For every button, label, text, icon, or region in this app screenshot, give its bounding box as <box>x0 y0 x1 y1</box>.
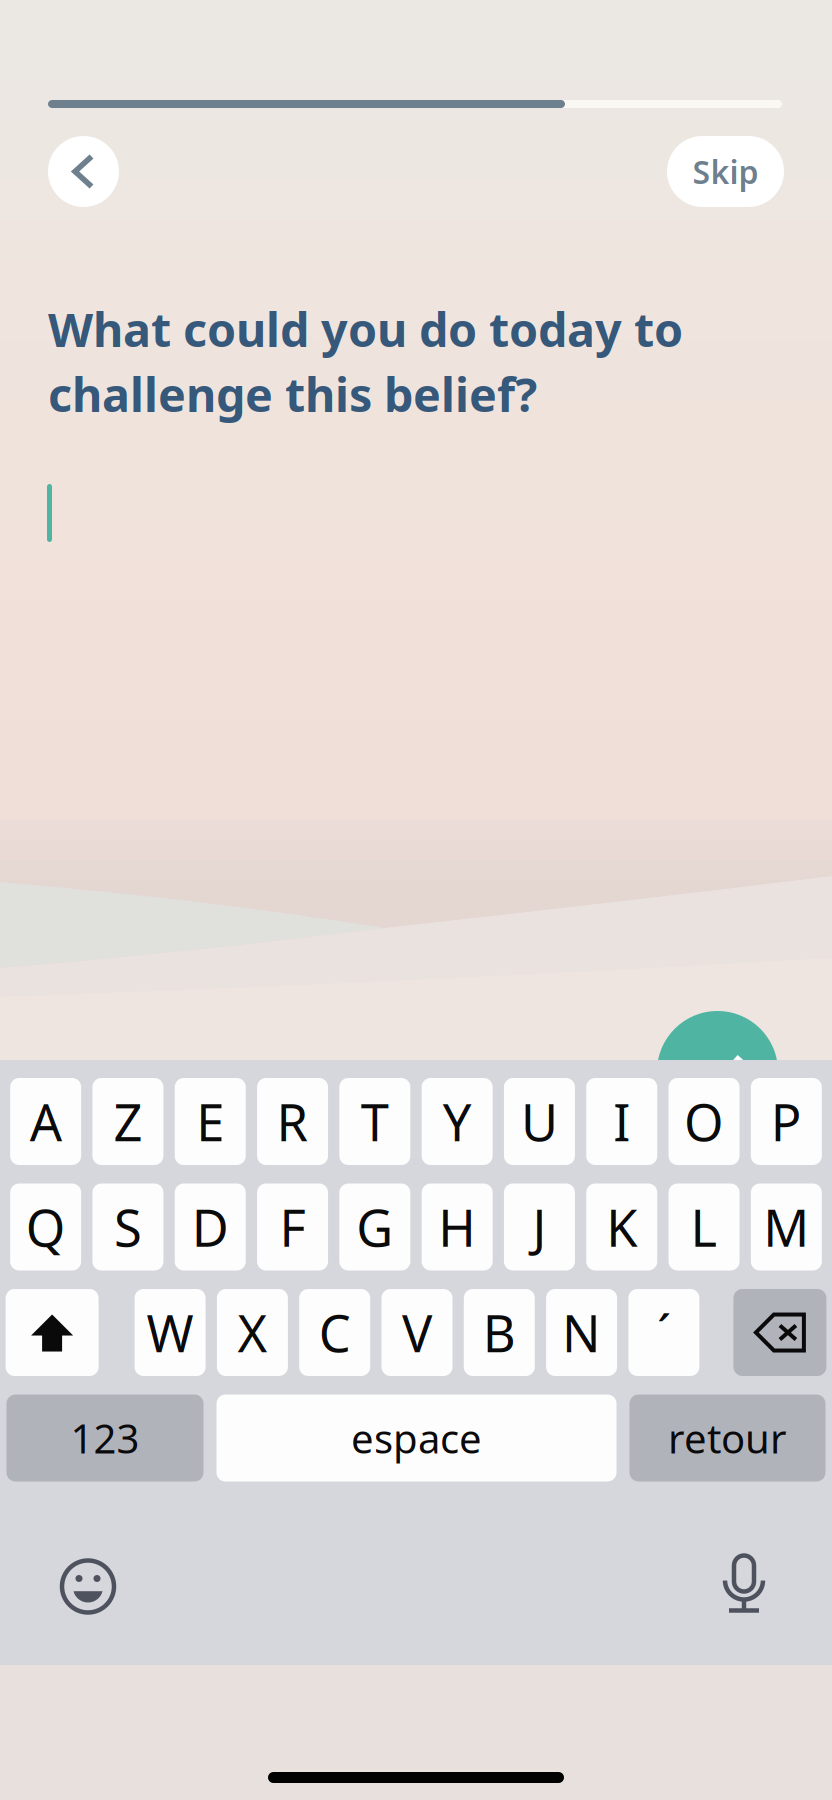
staticText: C <box>319 1299 351 1366</box>
button[interactable]: B <box>464 1289 535 1376</box>
staticText: Skip <box>692 150 758 193</box>
staticText: I <box>613 1088 630 1155</box>
button[interactable]: M <box>751 1183 822 1270</box>
button[interactable]: Skip <box>667 136 784 207</box>
button[interactable]: A <box>10 1078 81 1165</box>
staticText: X <box>237 1299 267 1366</box>
staticText: Z <box>113 1088 142 1155</box>
button[interactable]: ´ <box>628 1289 699 1376</box>
button[interactable]: I <box>586 1078 657 1165</box>
button[interactable]: D <box>175 1183 246 1270</box>
staticText: ´ <box>657 1299 671 1366</box>
button[interactable]: T <box>339 1078 410 1165</box>
button[interactable]: W <box>135 1289 206 1376</box>
button[interactable]: Y <box>422 1078 493 1165</box>
staticText: S <box>114 1193 142 1261</box>
button[interactable]: Z <box>92 1078 163 1165</box>
button[interactable]: C <box>299 1289 370 1376</box>
staticText: G <box>356 1193 393 1261</box>
staticText: espace <box>351 1411 482 1464</box>
button[interactable]: X <box>217 1289 288 1376</box>
button[interactable]: F <box>257 1183 328 1270</box>
button[interactable]: U <box>504 1078 575 1165</box>
staticText: E <box>196 1088 224 1155</box>
button[interactable]: K <box>586 1183 657 1270</box>
staticText: R <box>276 1088 308 1155</box>
staticText: L <box>690 1193 717 1261</box>
button[interactable]: Q <box>10 1183 81 1270</box>
button[interactable]: Emoji keyboard <box>58 1556 118 1616</box>
staticText: N <box>562 1299 601 1366</box>
staticText: U <box>521 1088 558 1155</box>
staticText: A <box>30 1088 62 1155</box>
staticText: T <box>361 1088 389 1155</box>
button[interactable]: R <box>257 1078 328 1165</box>
staticText: B <box>483 1299 516 1366</box>
button[interactable]: Back <box>48 136 119 207</box>
staticText: Y <box>443 1088 472 1155</box>
button[interactable]: S <box>92 1183 163 1270</box>
button[interactable]: V <box>381 1289 452 1376</box>
button[interactable]: N <box>546 1289 617 1376</box>
staticText: retour <box>668 1411 787 1464</box>
staticText: What could you do today to challenge thi… <box>48 298 683 425</box>
button[interactable]: espace <box>216 1394 616 1481</box>
staticText: V <box>402 1299 432 1366</box>
staticText: 123 <box>70 1411 139 1464</box>
button[interactable]: retour <box>629 1394 825 1481</box>
button[interactable]: 123 <box>6 1394 203 1481</box>
staticText: H <box>438 1193 476 1261</box>
staticText: J <box>532 1193 546 1261</box>
staticText: M <box>763 1193 809 1261</box>
button[interactable]: L <box>668 1183 739 1270</box>
staticText: Q <box>26 1193 66 1261</box>
staticText: K <box>606 1193 637 1261</box>
button[interactable]: G <box>339 1183 410 1270</box>
button[interactable]: J <box>504 1183 575 1270</box>
button[interactable]: Dictation <box>714 1556 774 1616</box>
button[interactable]: H <box>422 1183 493 1270</box>
button[interactable]: O <box>668 1078 739 1165</box>
button[interactable]: Delete <box>733 1289 826 1376</box>
button[interactable]: E <box>175 1078 246 1165</box>
staticText: D <box>192 1193 229 1261</box>
staticText: P <box>771 1088 802 1155</box>
staticText: O <box>684 1088 724 1155</box>
button[interactable]: Shift <box>6 1289 99 1376</box>
button[interactable]: P <box>751 1078 822 1165</box>
staticText: W <box>147 1299 194 1366</box>
staticText: F <box>279 1193 305 1261</box>
